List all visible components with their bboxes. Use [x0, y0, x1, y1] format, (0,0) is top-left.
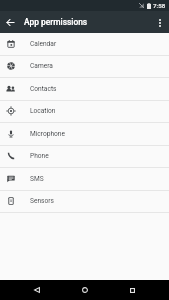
button[interactable]: Back — [27, 280, 47, 300]
button[interactable]: Calendar — [0, 33, 169, 56]
staticText: Sensors — [30, 197, 54, 205]
staticText: Contacts — [30, 85, 57, 93]
button[interactable]: Recent apps — [122, 280, 142, 300]
button[interactable]: Home — [75, 280, 95, 300]
staticText: Camera — [30, 62, 53, 70]
button[interactable]: Phone — [0, 145, 169, 168]
button[interactable]: Microphone — [0, 123, 169, 146]
staticText: SMS — [30, 175, 44, 183]
staticText: 7:58 — [153, 2, 166, 9]
button[interactable]: Camera — [0, 55, 169, 78]
staticText: Microphone — [30, 130, 65, 138]
button[interactable]: More options — [153, 16, 166, 29]
button[interactable]: Location — [0, 100, 169, 123]
staticText: App permissions — [24, 17, 88, 27]
staticText: Phone — [30, 152, 49, 160]
button[interactable]: Contacts — [0, 78, 169, 101]
button[interactable]: Navigate up — [3, 15, 18, 30]
button[interactable]: Sensors — [0, 190, 169, 213]
staticText: Calendar — [30, 40, 57, 48]
staticText: Location — [30, 107, 56, 115]
button[interactable]: SMS — [0, 168, 169, 191]
